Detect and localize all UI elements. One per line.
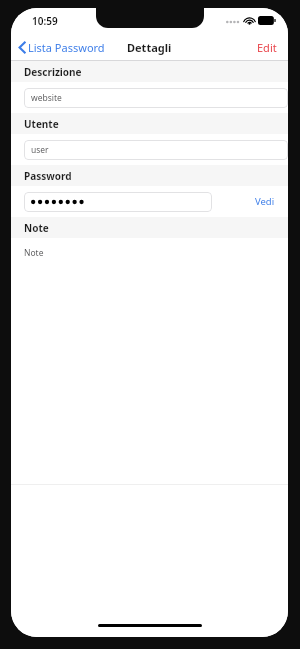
button[interactable]: Edit: [246, 33, 288, 61]
staticText: Dettagli: [127, 40, 172, 55]
button[interactable]: Vedi: [242, 186, 288, 217]
staticText: Edit: [257, 40, 277, 55]
staticText: Utente: [24, 117, 59, 131]
staticText: Descrizione: [24, 65, 82, 79]
staticText: Vedi: [255, 195, 275, 208]
staticText: Lista Password: [28, 40, 105, 55]
button[interactable]: Note: [11, 238, 288, 621]
button[interactable]: user: [24, 140, 288, 160]
staticText: user: [31, 144, 49, 156]
other: Back: [19, 41, 26, 54]
button[interactable]: website: [24, 88, 288, 108]
button[interactable]: Back: [11, 33, 111, 61]
button[interactable]: [24, 192, 212, 212]
staticText: website: [31, 92, 62, 104]
staticText: Password: [24, 169, 72, 183]
staticText: Note: [24, 247, 44, 259]
staticText: Note: [24, 221, 49, 235]
staticText: 10:59: [32, 14, 58, 28]
